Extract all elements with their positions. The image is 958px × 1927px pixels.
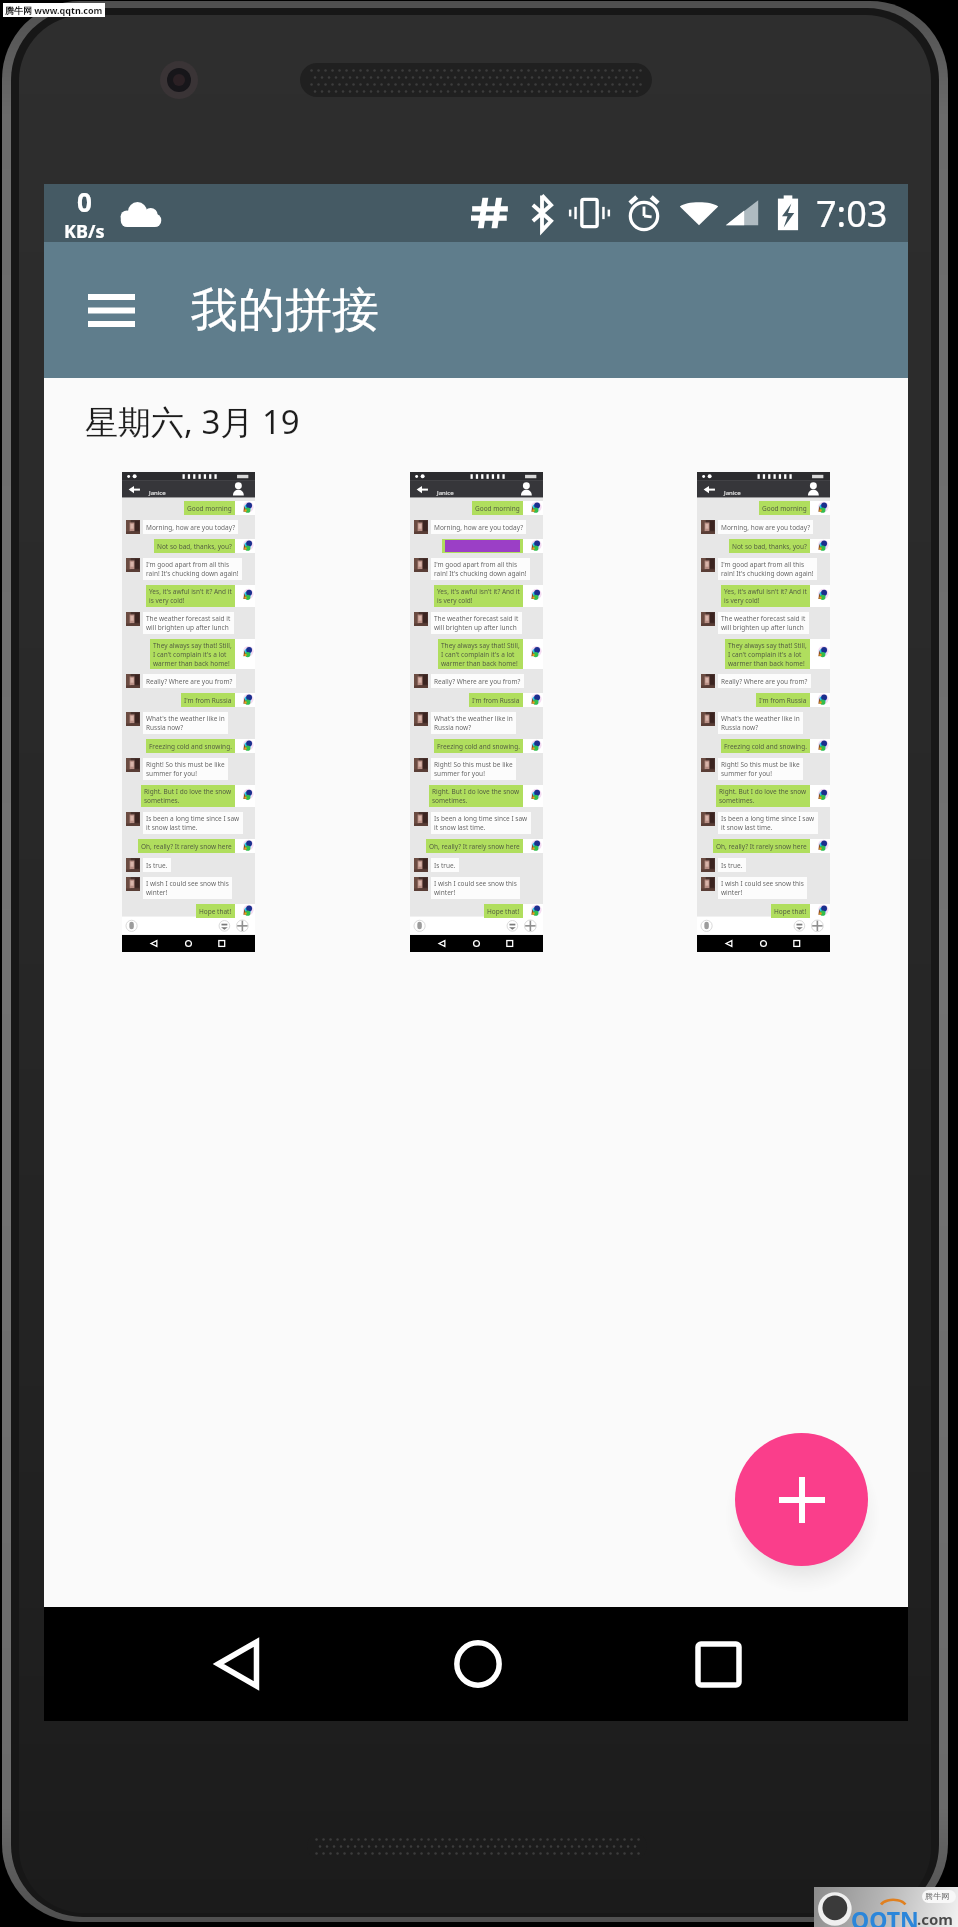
- staticText: Is been a long time since I saw: [146, 814, 240, 823]
- staticText: Good morning: [762, 504, 807, 513]
- staticText: What's the weather like in: [434, 714, 513, 723]
- staticText: Oh, really? It rarely snow here: [141, 842, 232, 851]
- staticText: Good morning: [187, 504, 232, 513]
- staticText: warmer than back home!: [728, 659, 805, 668]
- button[interactable]: Stitched screenshot: [122, 472, 255, 952]
- staticText: Russia now?: [146, 723, 184, 732]
- staticText: Not so bad, thanks, you?: [157, 542, 232, 551]
- staticText: is very cold!: [437, 596, 473, 605]
- staticText: sometimes.: [432, 796, 468, 805]
- staticText: Good morning: [475, 504, 520, 513]
- staticText: The weather forecast said it: [721, 614, 806, 623]
- staticText: sometimes.: [719, 796, 755, 805]
- staticText: sometimes.: [144, 796, 180, 805]
- staticText: it snow last time.: [434, 823, 486, 832]
- staticText: winter!: [434, 888, 456, 897]
- staticText: Yes, it's awful isn't it? And it: [149, 587, 232, 596]
- button[interactable]: Open navigation menu: [73, 272, 149, 348]
- staticText: it snow last time.: [146, 823, 198, 832]
- staticText: .com: [917, 1909, 953, 1927]
- staticText: Janice: [437, 489, 454, 497]
- staticText: The weather forecast said it: [434, 614, 519, 623]
- staticText: Not so bad, thanks, you?: [732, 542, 807, 551]
- button[interactable]: Recent apps: [628, 1607, 808, 1721]
- staticText: Right. But I do love the snow: [719, 787, 807, 796]
- staticText: Really? Where are you from?: [146, 677, 233, 686]
- staticText: I can't complain it's a lot: [153, 650, 227, 659]
- staticText: I wish I could see snow this: [721, 879, 804, 888]
- staticText: Russia now?: [434, 723, 472, 732]
- staticText: 星期六, 3月 19: [85, 399, 300, 444]
- staticText: Freezing cold and snowing.: [437, 742, 520, 751]
- staticText: Janice: [149, 489, 166, 497]
- staticText: Morning, how are you today?: [434, 523, 523, 532]
- staticText: What's the weather like in: [721, 714, 800, 723]
- staticText: I wish I could see snow this: [146, 879, 229, 888]
- button[interactable]: Stitched screenshot: [697, 472, 830, 952]
- button[interactable]: Add: [735, 1433, 868, 1566]
- staticText: Yes, it's awful isn't it? And it: [724, 587, 807, 596]
- staticText: will brighten up after lunch: [434, 623, 517, 632]
- staticText: rain! It's chucking down again!: [721, 569, 814, 578]
- staticText: warmer than back home!: [153, 659, 230, 668]
- staticText: Is true.: [721, 861, 743, 870]
- staticText: I'm from Russia: [472, 696, 520, 705]
- staticText: is very cold!: [724, 596, 760, 605]
- staticText: QQTN: [851, 1904, 919, 1927]
- staticText: I'm good apart from all this: [721, 560, 805, 569]
- staticText: I wish I could see snow this: [434, 879, 517, 888]
- staticText: I'm from Russia: [184, 696, 232, 705]
- staticText: Hope that!: [774, 907, 807, 916]
- button[interactable]: Stitched screenshot: [410, 472, 543, 952]
- staticText: 0: [77, 184, 92, 219]
- staticText: rain! It's chucking down again!: [434, 569, 527, 578]
- staticText: What's the weather like in: [146, 714, 225, 723]
- staticText: Morning, how are you today?: [146, 523, 235, 532]
- staticText: summer for you!: [146, 769, 197, 778]
- staticText: Oh, really? It rarely snow here: [429, 842, 520, 851]
- staticText: Hope that!: [487, 907, 520, 916]
- staticText: it snow last time.: [721, 823, 773, 832]
- staticText: Right! So this must be like: [721, 760, 800, 769]
- staticText: Right. But I do love the snow: [432, 787, 520, 796]
- button[interactable]: Home: [388, 1607, 568, 1721]
- staticText: The weather forecast said it: [146, 614, 231, 623]
- staticText: rain! It's chucking down again!: [146, 569, 239, 578]
- staticText: Freezing cold and snowing.: [724, 742, 807, 751]
- staticText: 7:03: [816, 189, 888, 238]
- staticText: Right. But I do love the snow: [144, 787, 232, 796]
- staticText: Oh, really? It rarely snow here: [716, 842, 807, 851]
- staticText: Freezing cold and snowing.: [149, 742, 232, 751]
- staticText: Janice: [724, 489, 741, 497]
- staticText: I can't complain it's a lot: [441, 650, 515, 659]
- staticText: Hope that!: [199, 907, 232, 916]
- staticText: I'm from Russia: [759, 696, 807, 705]
- staticText: is very cold!: [149, 596, 185, 605]
- staticText: warmer than back home!: [441, 659, 518, 668]
- staticText: I'm good apart from all this: [146, 560, 230, 569]
- staticText: They always say that! Still,: [153, 641, 232, 650]
- staticText: I can't complain it's a lot: [728, 650, 802, 659]
- staticText: Is true.: [434, 861, 456, 870]
- staticText: I'm good apart from all this: [434, 560, 518, 569]
- staticText: summer for you!: [721, 769, 772, 778]
- staticText: 腾牛网 www.qqtn.com: [5, 4, 103, 16]
- staticText: will brighten up after lunch: [146, 623, 229, 632]
- staticText: Right! So this must be like: [146, 760, 225, 769]
- button[interactable]: Back: [148, 1607, 328, 1721]
- staticText: Is been a long time since I saw: [721, 814, 815, 823]
- staticText: summer for you!: [434, 769, 485, 778]
- staticText: They always say that! Still,: [441, 641, 520, 650]
- staticText: Yes, it's awful isn't it? And it: [437, 587, 520, 596]
- staticText: Is been a long time since I saw: [434, 814, 528, 823]
- staticText: winter!: [146, 888, 168, 897]
- staticText: 腾牛网: [925, 1891, 949, 1901]
- staticText: 我的拼接: [191, 281, 379, 340]
- staticText: winter!: [721, 888, 743, 897]
- staticText: Morning, how are you today?: [721, 523, 810, 532]
- staticText: They always say that! Still,: [728, 641, 807, 650]
- staticText: Right! So this must be like: [434, 760, 513, 769]
- staticText: will brighten up after lunch: [721, 623, 804, 632]
- staticText: Really? Where are you from?: [434, 677, 521, 686]
